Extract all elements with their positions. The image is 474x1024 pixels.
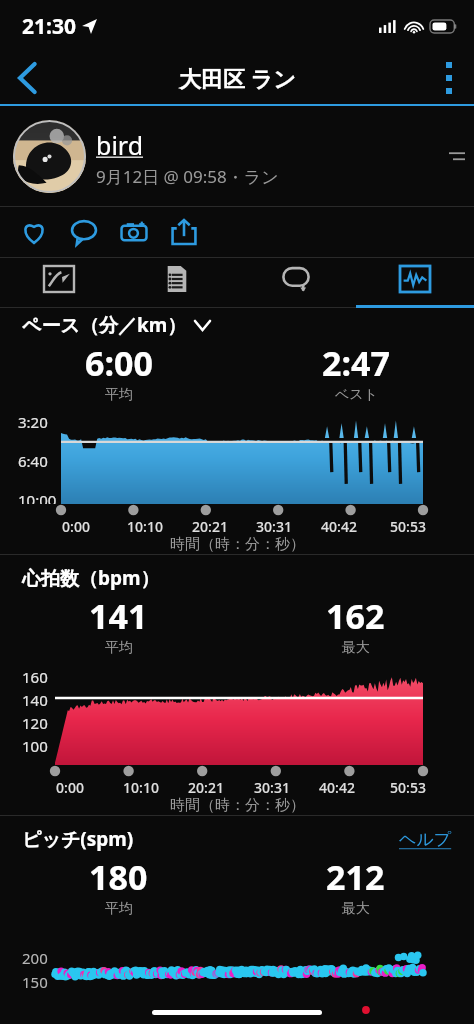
staticText: 120 <box>22 713 48 733</box>
staticText: 180 <box>89 854 148 900</box>
staticText: 10:00 <box>18 490 57 504</box>
button[interactable]: Add photo <box>116 214 152 250</box>
staticText: 10:10 <box>119 517 171 536</box>
staticText: 時間（時：分：秒） <box>170 535 305 554</box>
staticText: 140 <box>22 690 48 710</box>
staticText: 3:20 <box>18 412 48 432</box>
staticText: 50:53 <box>385 778 431 797</box>
button[interactable]: ヘルプ <box>399 829 452 850</box>
staticText: 100 <box>22 736 48 756</box>
button[interactable]: Like <box>16 214 52 250</box>
button[interactable]: Share <box>166 214 202 250</box>
staticText: 平均 <box>105 386 133 404</box>
staticText: 10:10 <box>115 778 167 797</box>
staticText: 最大 <box>342 639 370 657</box>
staticText: 30:31 <box>248 517 300 536</box>
staticText: 141 <box>89 593 148 639</box>
staticText: 40:42 <box>311 778 363 797</box>
staticText: 0:00 <box>47 778 93 797</box>
staticText: 9月12日 @ 09:58・ラン <box>96 165 279 188</box>
staticText: 21:30 <box>22 12 76 41</box>
staticText: 0:00 <box>53 517 99 536</box>
button[interactable]: Comment <box>66 214 102 250</box>
staticText: 大田区 ラン <box>179 63 296 93</box>
staticText: bird <box>96 128 144 162</box>
staticText: ヘルプ <box>399 829 452 850</box>
button[interactable]: Map <box>0 258 118 308</box>
staticText: 40:42 <box>313 517 365 536</box>
staticText: 最大 <box>342 900 370 918</box>
staticText: 時間（時：分：秒） <box>170 796 305 815</box>
staticText: ペース（分／km） <box>22 312 187 338</box>
staticText: 162 <box>326 593 385 639</box>
staticText: 2:47 <box>322 340 390 386</box>
staticText: 30:31 <box>246 778 298 797</box>
staticText: 平均 <box>105 639 133 657</box>
button[interactable]: Back <box>0 52 54 104</box>
staticText: 6:00 <box>85 340 153 386</box>
staticText: 50:53 <box>385 517 431 536</box>
staticText: 心拍数（bpm） <box>22 565 160 591</box>
staticText: ピッチ(spm) <box>22 826 134 852</box>
staticText: 200 <box>22 948 48 968</box>
button[interactable]: Charts <box>355 258 474 308</box>
staticText: 20:21 <box>180 778 232 797</box>
staticText: 150 <box>22 972 48 992</box>
button[interactable]: ペース（分／km） <box>22 312 474 338</box>
staticText: 6:40 <box>18 451 48 471</box>
staticText: 212 <box>326 854 385 900</box>
staticText: 平均 <box>105 900 133 918</box>
staticText: ベスト <box>335 386 378 404</box>
button[interactable] <box>13 120 86 193</box>
button[interactable]: Laps <box>236 258 355 308</box>
staticText: 20:21 <box>184 517 236 536</box>
staticText: 160 <box>22 667 48 687</box>
button[interactable]: More options <box>424 53 474 103</box>
button[interactable]: Details <box>118 258 236 308</box>
